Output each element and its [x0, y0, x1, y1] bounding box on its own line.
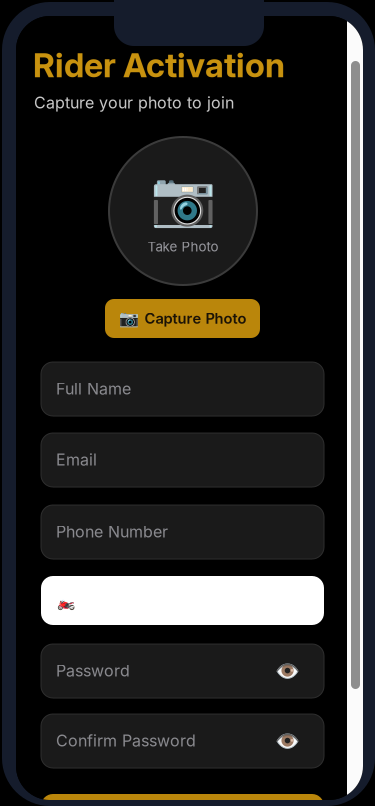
button[interactable]: 📷 — [109, 137, 257, 285]
staticText: Rider Activation — [33, 45, 285, 85]
staticText: 📷 — [118, 309, 138, 328]
staticText: 👁️ — [275, 729, 300, 752]
staticText: Capture Photo — [144, 310, 246, 327]
staticText: Full Name — [56, 379, 131, 398]
staticText: 👁️ — [275, 659, 300, 682]
staticText: Phone Number — [56, 522, 168, 541]
staticText: 🏍️ — [57, 593, 75, 610]
staticText: Capture your photo to join — [34, 93, 234, 112]
staticText: Take Photo — [147, 239, 218, 255]
button[interactable]: Confirm Password — [41, 714, 324, 768]
staticText: Password — [56, 661, 130, 680]
staticText: 📷 — [150, 167, 216, 230]
staticText: Email — [56, 450, 97, 469]
button[interactable] — [41, 794, 324, 806]
button[interactable]: 🏍️ — [41, 576, 324, 625]
staticText: Confirm Password — [56, 731, 196, 750]
button[interactable]: Password — [41, 644, 324, 698]
button[interactable]: Full Name — [41, 362, 324, 416]
button[interactable]: Email — [41, 433, 324, 487]
button[interactable]: 📷 — [105, 299, 260, 338]
button[interactable]: Phone Number — [41, 505, 324, 559]
